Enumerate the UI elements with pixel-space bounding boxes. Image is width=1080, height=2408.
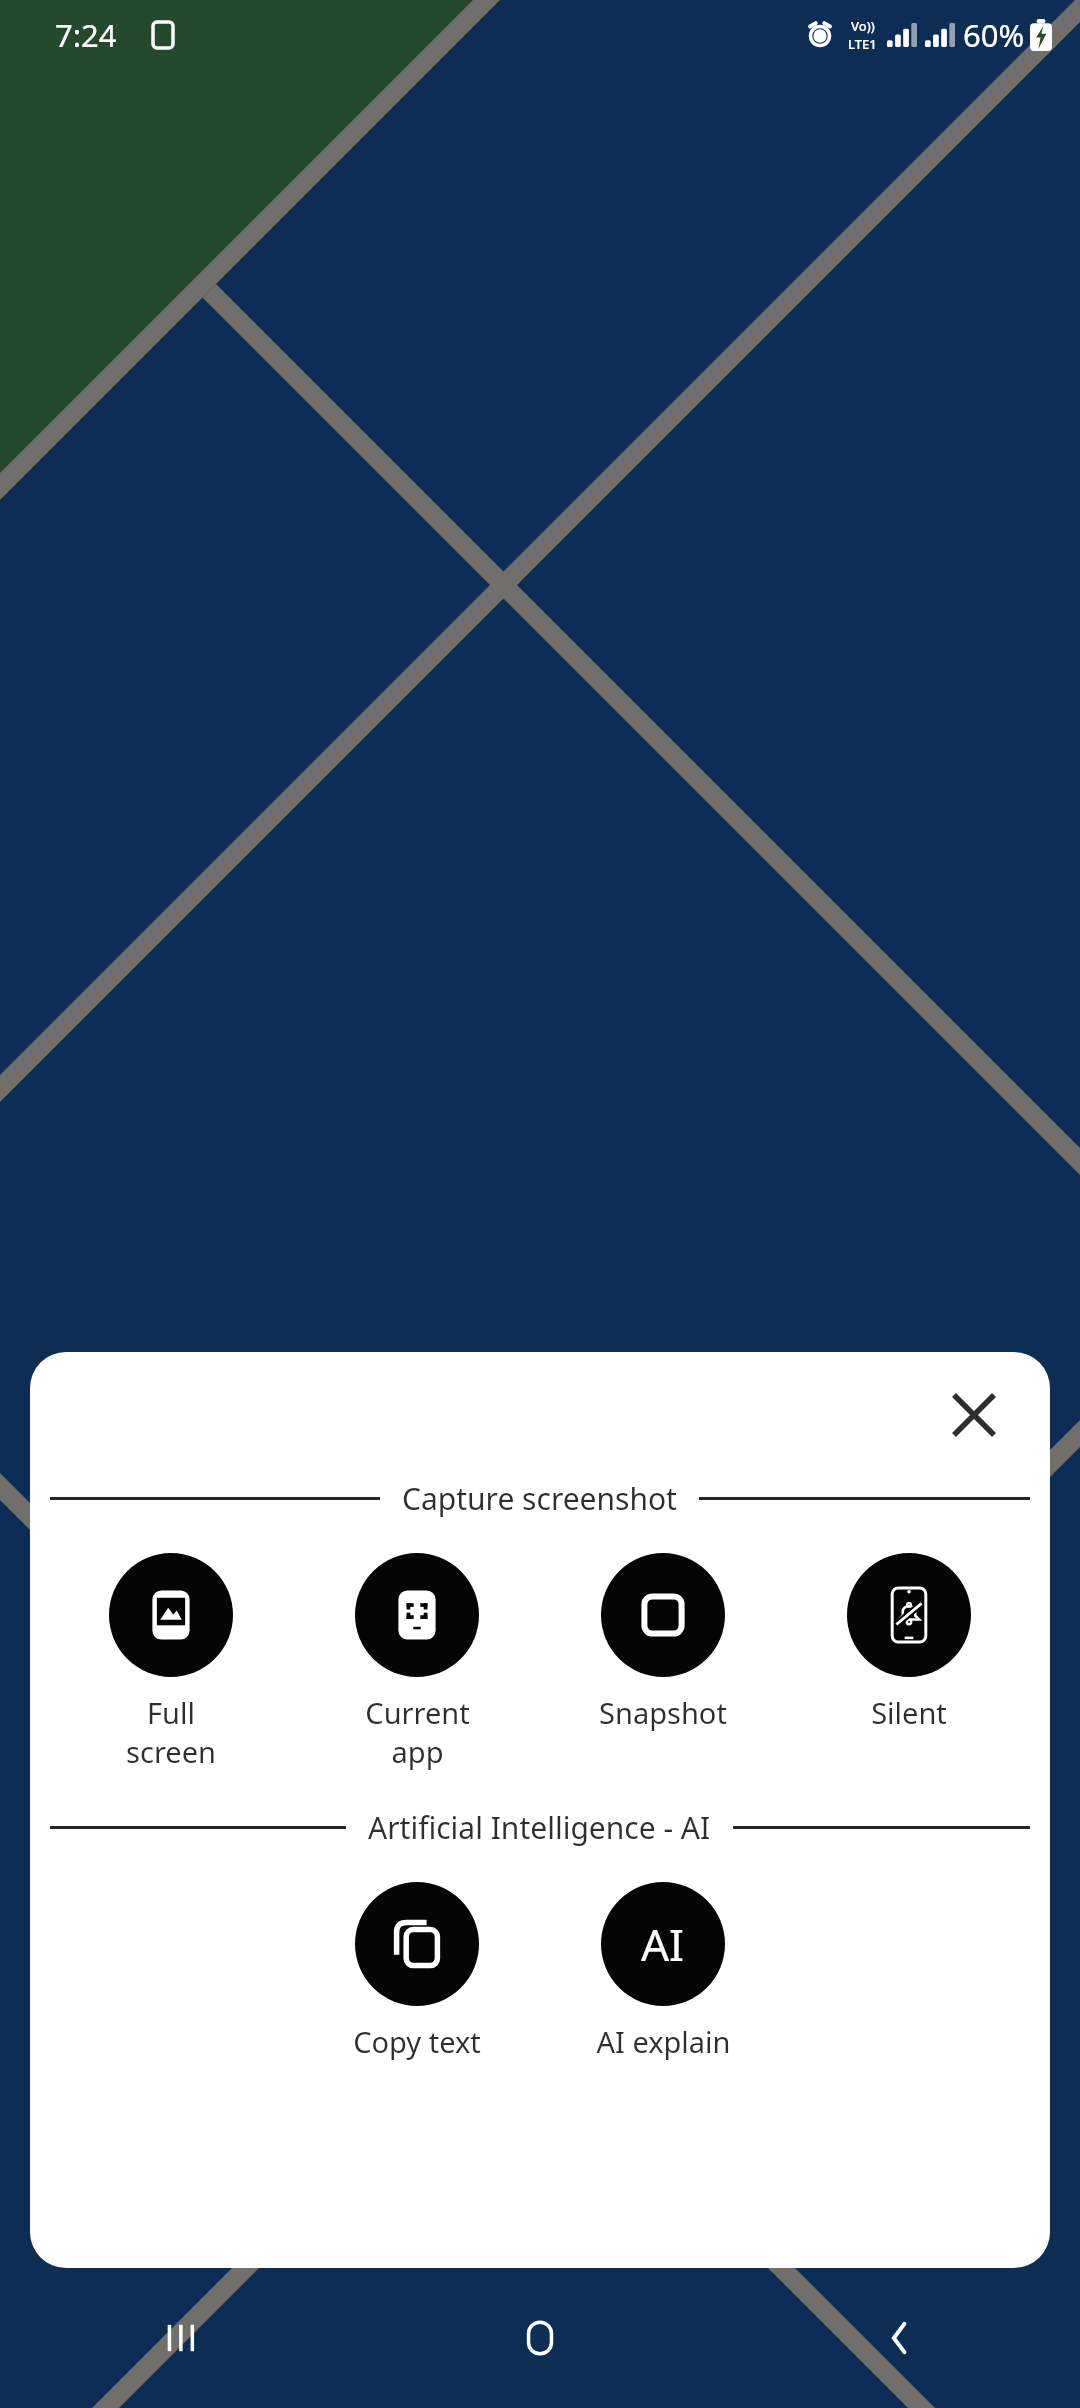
staticText: Vo)) (851, 17, 875, 35)
staticText: 60% (963, 14, 1025, 56)
button[interactable]: Recent apps (0, 2268, 360, 2408)
staticText: AI explain (596, 2022, 731, 2061)
button[interactable]: Full screen (48, 1553, 294, 1771)
staticText: 7:24 (55, 14, 117, 56)
staticText: Copy text (353, 2022, 481, 2061)
staticText: Full screen (126, 1693, 216, 1771)
button[interactable]: Current app (294, 1553, 540, 1771)
staticText: Capture screenshot (402, 1478, 677, 1519)
button[interactable]: Copy text (294, 1882, 540, 2061)
staticText: Artificial Intelligence - AI (368, 1807, 711, 1848)
button[interactable]: AI (540, 1882, 786, 2061)
button[interactable]: Snapshot (540, 1553, 786, 1732)
staticText: Snapshot (599, 1693, 727, 1732)
button[interactable]: Home (360, 2268, 720, 2408)
staticText: LTE1 (848, 35, 877, 53)
staticText: AI (641, 1914, 685, 1974)
button[interactable]: Silent (786, 1553, 1032, 1732)
button[interactable]: Close (936, 1377, 1012, 1453)
staticText: Current app (365, 1693, 470, 1771)
button[interactable]: Back (720, 2268, 1080, 2408)
staticText: Silent (871, 1693, 947, 1732)
